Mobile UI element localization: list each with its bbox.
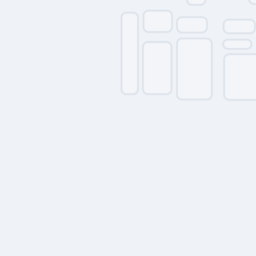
button[interactable]: Loading item 2 xyxy=(140,8,175,35)
button[interactable]: Loading item 7 xyxy=(221,17,256,36)
button[interactable]: Loading item 9 xyxy=(221,51,256,103)
button[interactable]: Loading item 3 xyxy=(140,39,174,97)
button[interactable]: Loading item 6 xyxy=(174,35,215,102)
button[interactable]: Loading item 4 xyxy=(184,0,208,8)
button[interactable]: Loading item 8 xyxy=(220,37,254,52)
button[interactable]: Loading item 1 xyxy=(118,10,141,97)
button[interactable]: Loading item 10 xyxy=(246,0,256,7)
button[interactable]: Loading item 5 xyxy=(174,14,210,35)
